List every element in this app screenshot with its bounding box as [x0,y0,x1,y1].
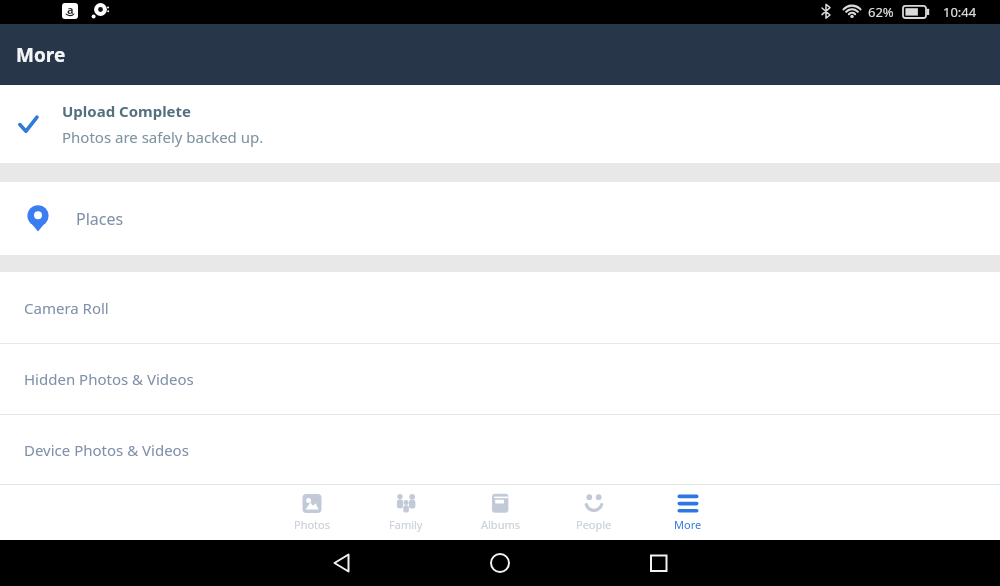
button[interactable]: Places [0,182,1000,255]
staticText: Photos are safely backed up. [62,127,264,147]
button[interactable] [334,540,667,586]
staticText: Albums [481,517,520,532]
button[interactable]: Hidden Photos & Videos [0,344,1000,414]
staticText: People [576,517,612,532]
staticText: 62% [868,3,894,21]
button[interactable]: Family [359,485,453,540]
staticText: Hidden Photos & Videos [24,369,194,389]
staticText: More [16,42,66,68]
staticText: Camera Roll [24,298,109,318]
staticText: More [674,517,702,532]
staticText: 10:44 [943,3,977,21]
button[interactable]: People [547,485,641,540]
button[interactable]: More [641,485,735,540]
button[interactable]: Photos [265,485,359,540]
staticText: Upload Complete [62,101,192,121]
button[interactable]: Camera Roll [0,272,1000,343]
staticText: Family [389,517,423,532]
staticText: Device Photos & Videos [24,440,189,460]
staticText: Photos [294,517,331,532]
staticText: Places [76,208,124,230]
button[interactable]: Upload Complete [0,85,1000,163]
button[interactable] [667,540,1000,586]
staticText: a [67,3,74,17]
button[interactable]: Albums [453,485,547,540]
button[interactable]: Device Photos & Videos [0,415,1000,484]
